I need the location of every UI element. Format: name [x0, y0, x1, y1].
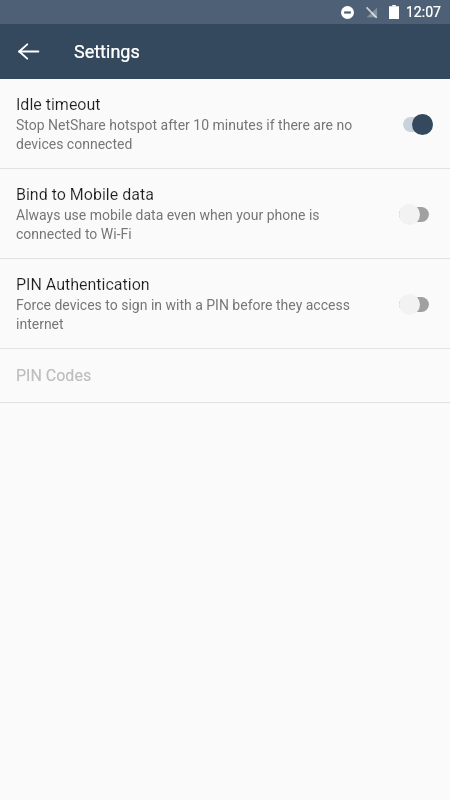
button[interactable]: PIN Codes: [0, 349, 450, 402]
button[interactable]: On: [392, 100, 440, 148]
staticText: Stop NetShare hotspot after 10 minutes i…: [16, 117, 384, 152]
staticText: Force devices to sign in with a PIN befo…: [16, 297, 384, 332]
staticText: PIN Codes: [16, 366, 92, 385]
staticText: Settings: [74, 41, 140, 62]
staticText: PIN Authentication: [16, 275, 150, 294]
button[interactable]: Bind to Mobile data: [0, 169, 450, 258]
staticText: Idle timeout: [16, 95, 101, 114]
button[interactable]: Off: [392, 280, 440, 328]
staticText: 12:07: [406, 4, 441, 20]
staticText: Bind to Mobile data: [16, 185, 154, 204]
button[interactable]: PIN Authentication: [0, 259, 450, 348]
button[interactable]: Off: [392, 190, 440, 238]
staticText: Always use mobile data even when your ph…: [16, 207, 384, 242]
button[interactable]: Back: [0, 24, 56, 79]
button[interactable]: Idle timeout: [0, 79, 450, 168]
